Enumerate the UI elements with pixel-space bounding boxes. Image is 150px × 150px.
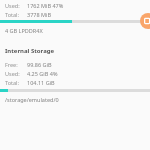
staticText: 104.11 GiB bbox=[27, 79, 55, 86]
staticText: /storage/emulated/0 bbox=[5, 96, 59, 103]
staticText: 99.86 GiB bbox=[27, 61, 52, 68]
staticText: Used: bbox=[5, 70, 20, 77]
staticText: Free: bbox=[5, 61, 18, 68]
staticText: 4 GB LPDDR4X bbox=[5, 27, 43, 34]
staticText: Total: bbox=[5, 11, 19, 18]
staticText: 3778 MiB bbox=[27, 11, 51, 18]
staticText: Used: bbox=[5, 2, 20, 9]
staticText: 1762 MiB 47% bbox=[27, 2, 64, 9]
staticText: Internal Storage bbox=[5, 47, 55, 55]
button[interactable]: Screenshot bbox=[140, 13, 150, 29]
staticText: Total: bbox=[5, 79, 19, 86]
staticText: 4.25 GiB 4% bbox=[27, 70, 58, 77]
